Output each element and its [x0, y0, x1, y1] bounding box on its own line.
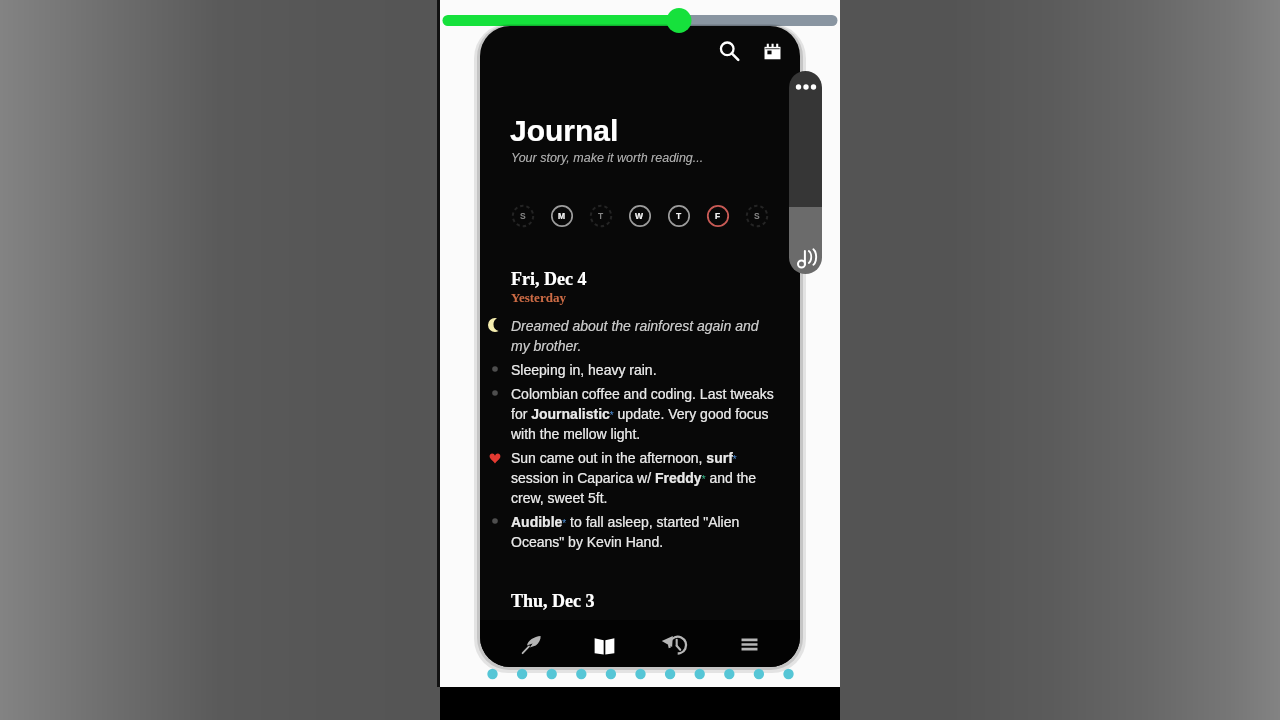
button[interactable]: T [659, 196, 698, 235]
staticText: Audible* to fall asleep, started "Alien … [511, 511, 778, 551]
staticText: Your story, make it worth reading... [511, 151, 704, 165]
button[interactable]: Write [509, 622, 553, 666]
button[interactable]: Audible* to fall asleep, started "Alien … [511, 511, 778, 551]
staticText: S [520, 211, 526, 220]
button[interactable]: S [503, 196, 542, 235]
staticText: Sleeping in, heavy rain. [511, 359, 657, 379]
staticText: Fri, Dec 4 [511, 269, 587, 289]
button[interactable]: T [581, 196, 620, 235]
button[interactable]: F [698, 196, 737, 235]
staticText: S [754, 211, 760, 220]
button[interactable]: Menu [727, 622, 771, 666]
staticText: T [676, 211, 682, 220]
button[interactable]: Search [711, 33, 745, 67]
staticText: M [558, 211, 566, 220]
staticText: W [635, 211, 644, 220]
staticText: Journal [510, 114, 619, 148]
button[interactable]: Colombian coffee and coding. Last tweaks… [511, 383, 778, 443]
button[interactable]: S [737, 196, 776, 235]
button[interactable]: W [620, 196, 659, 235]
staticText: Colombian coffee and coding. Last tweaks… [511, 383, 778, 443]
button[interactable]: Read [582, 622, 626, 666]
button[interactable]: History [654, 622, 698, 666]
button[interactable]: M [542, 196, 581, 235]
staticText: F [715, 211, 721, 220]
staticText: T [598, 211, 604, 220]
staticText: Sun came out in the afternoon, surf* ses… [511, 447, 778, 507]
button[interactable]: More options [789, 71, 822, 274]
button[interactable]: Sun came out in the afternoon, surf* ses… [511, 447, 778, 507]
button[interactable]: Calendar [755, 33, 789, 67]
staticText: Thu, Dec 3 [511, 591, 595, 611]
staticText: Dreamed about the rainforest again and m… [511, 315, 778, 355]
button[interactable]: Dreamed about the rainforest again and m… [511, 315, 778, 355]
staticText: Yesterday [511, 290, 566, 304]
button[interactable]: Sleeping in, heavy rain. [511, 359, 778, 379]
